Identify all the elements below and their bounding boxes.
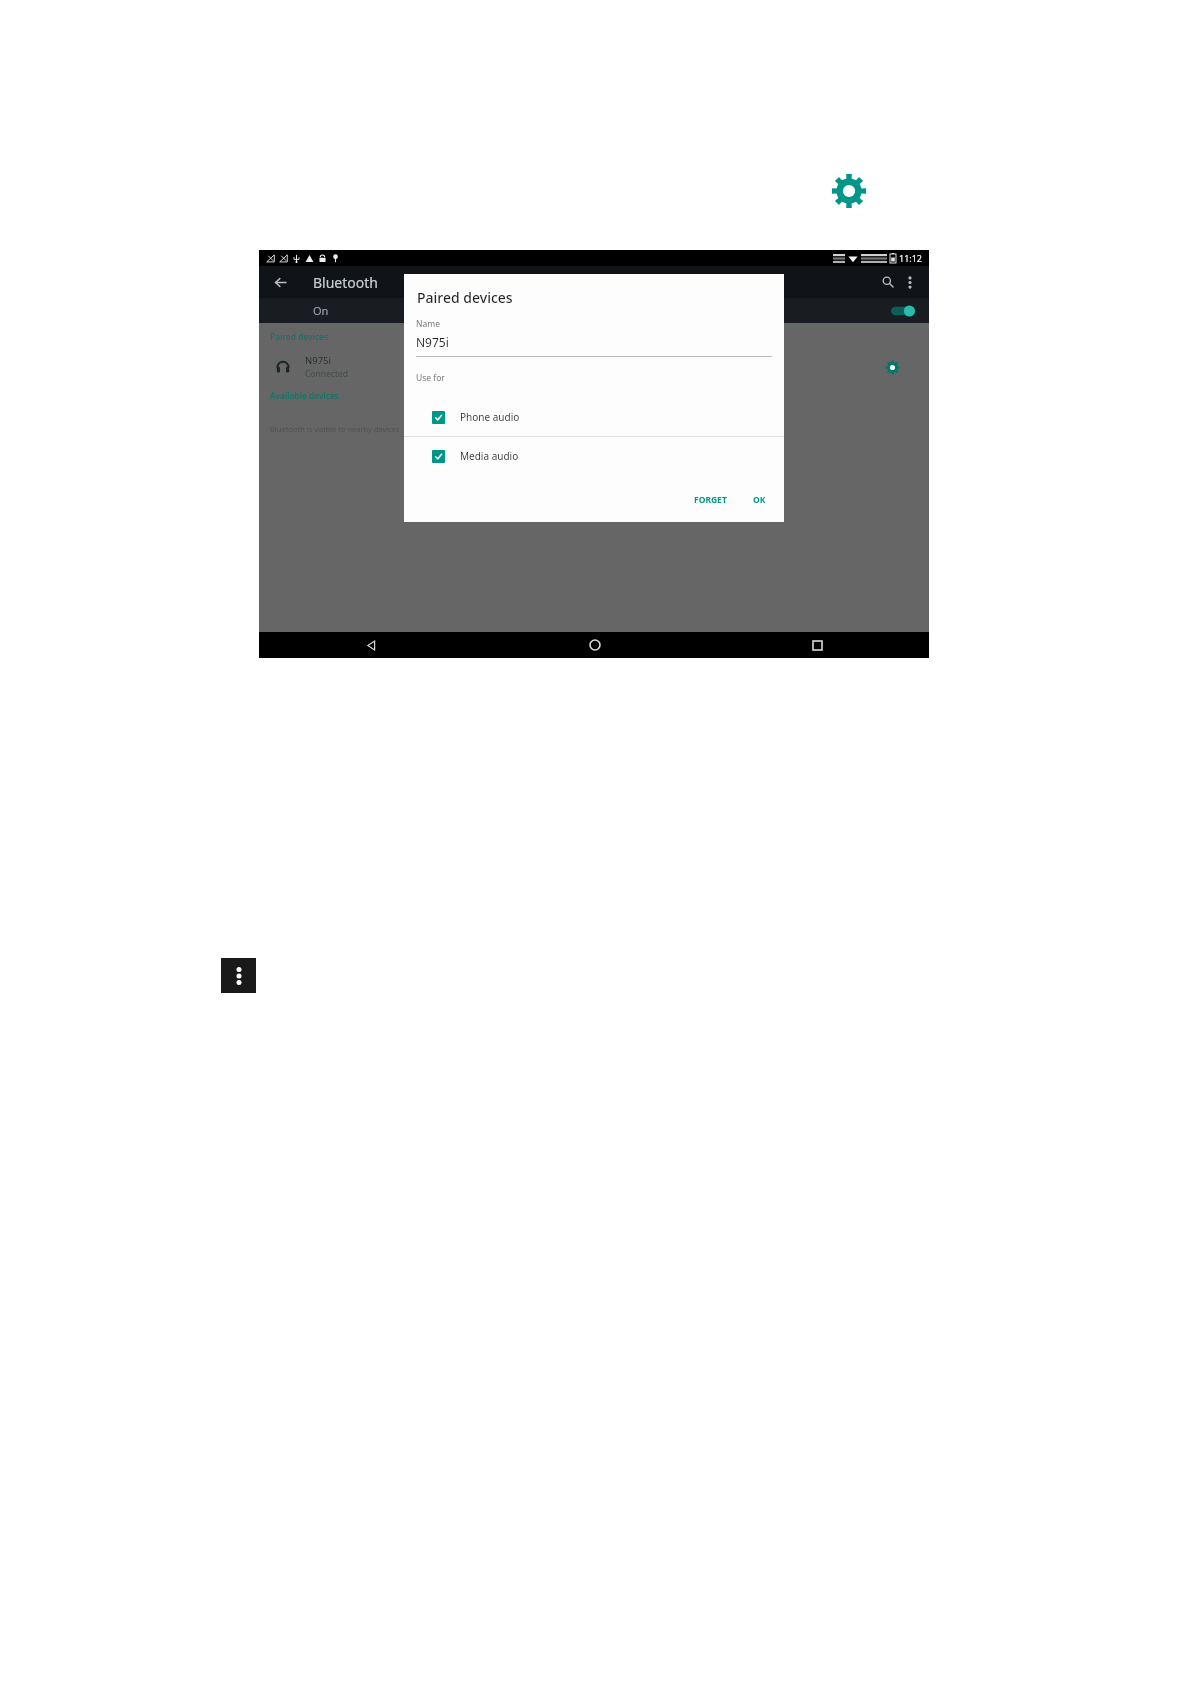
button[interactable]: Back	[259, 632, 483, 658]
staticText: OK	[753, 494, 766, 506]
button[interactable]: More options	[899, 271, 921, 293]
staticText: N975i	[305, 354, 331, 367]
button[interactable]: FORGET	[686, 489, 735, 511]
button[interactable]: Bluetooth on	[891, 304, 915, 318]
button[interactable]: Back	[269, 271, 291, 293]
button[interactable]: Home	[483, 632, 706, 658]
staticText: Bluetooth	[313, 273, 378, 292]
button[interactable]: Settings	[831, 173, 867, 209]
staticText: Bluetooth is visible to nearby devices	[270, 424, 400, 434]
staticText: FORGET	[694, 494, 727, 506]
staticText: N975i	[416, 334, 449, 350]
button[interactable]: More options	[221, 958, 256, 993]
button[interactable]: OK	[745, 489, 774, 511]
staticText: Paired devices	[270, 331, 329, 343]
button[interactable]: Media audio	[404, 437, 784, 475]
button[interactable]: On	[259, 298, 929, 323]
button[interactable]: Recent apps	[706, 632, 929, 658]
staticText: Connected	[305, 368, 348, 380]
staticText: Phone audio	[460, 410, 520, 424]
staticText: Name	[416, 318, 440, 330]
staticText: 11:12	[899, 252, 923, 264]
staticText: Paired devices	[417, 288, 513, 307]
button[interactable]: Phone audio	[404, 398, 784, 436]
staticText: Available devices	[270, 390, 339, 402]
button[interactable]: Search	[877, 271, 899, 293]
staticText: Media audio	[460, 449, 519, 463]
staticText: Use for	[416, 372, 445, 384]
staticText: On	[313, 303, 329, 318]
button[interactable]: N975i	[259, 352, 929, 382]
button[interactable]: Device settings	[881, 356, 903, 378]
